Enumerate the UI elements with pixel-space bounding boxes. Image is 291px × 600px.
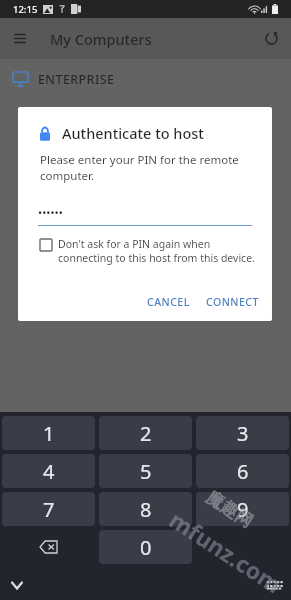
button[interactable]: 2 (99, 416, 192, 450)
button[interactable]: Refresh (251, 18, 291, 59)
button[interactable]: 0 (99, 530, 192, 564)
staticText: 0 (140, 534, 152, 561)
button[interactable]: Open navigation menu (0, 18, 40, 59)
staticText: 8 (140, 496, 152, 523)
button[interactable]: 6 (196, 454, 289, 488)
staticText: Don't ask for a PIN again when connectin… (58, 237, 260, 265)
button[interactable]: 3 (196, 416, 289, 450)
button[interactable]: Backspace (0, 528, 97, 566)
staticText: 9 (237, 496, 249, 523)
staticText: 魔趣网 (202, 487, 257, 532)
staticText: Authenticate to host (62, 123, 204, 143)
button[interactable]: Hide keyboard (5, 570, 28, 600)
button[interactable]: 4 (2, 454, 95, 488)
button[interactable]: ENTERPRISE (0, 59, 291, 99)
staticText: Please enter your PIN for the remote com… (40, 152, 248, 183)
staticText: ENTERPRISE (38, 71, 115, 88)
button[interactable]: Don't ask for a PIN again when connectin… (40, 237, 260, 265)
button[interactable]: CONNECT (198, 290, 267, 314)
button[interactable]: 8 (99, 492, 192, 526)
staticText: 7 (43, 496, 55, 523)
button[interactable]: Change keyboard (261, 570, 285, 600)
staticText: 1 (43, 420, 55, 447)
staticText: •••••• (38, 205, 63, 220)
staticText: 4 (43, 458, 55, 485)
button[interactable]: 7 (2, 492, 95, 526)
button[interactable]: 9 (196, 492, 289, 526)
button[interactable]: 1 (2, 416, 95, 450)
staticText: 6 (237, 458, 249, 485)
staticText: mfunz.com (164, 504, 288, 599)
staticText: 5 (140, 458, 152, 485)
button[interactable]: CANCEL (139, 290, 198, 314)
staticText: My Computers (50, 29, 152, 49)
staticText: CANCEL (147, 295, 190, 309)
button[interactable]: 5 (99, 454, 192, 488)
staticText: 12:15 (13, 3, 38, 16)
staticText: CONNECT (206, 295, 259, 309)
staticText: 3 (237, 420, 249, 447)
staticText: 2 (140, 420, 152, 447)
